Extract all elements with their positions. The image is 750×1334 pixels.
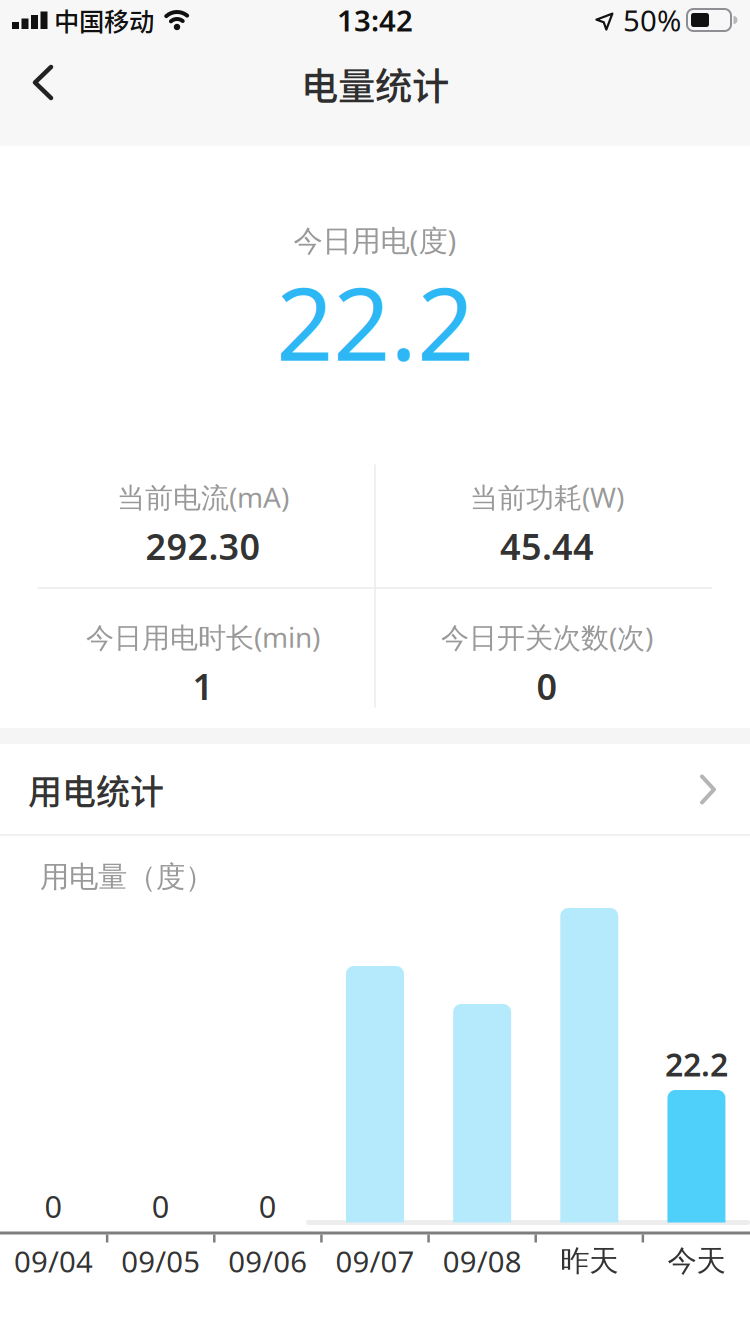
staticText: 1 (192, 662, 213, 710)
staticText: 0 (152, 1186, 170, 1226)
staticText: 09/04 (14, 1241, 93, 1280)
button[interactable]: 用电统计 (0, 744, 750, 835)
staticText: 292.30 (145, 522, 260, 570)
staticText: 50% (623, 0, 681, 39)
staticText: 09/05 (121, 1241, 200, 1280)
staticText: 0 (45, 1186, 63, 1226)
button[interactable]: Back (13, 52, 73, 112)
staticText: 22.2 (276, 256, 474, 388)
staticText: 用电量（度） (40, 859, 214, 895)
staticText: 0 (536, 662, 557, 710)
staticText: 今日用电(度) (293, 220, 456, 259)
staticText: 09/06 (228, 1241, 307, 1280)
staticText: 45.44 (500, 522, 594, 570)
staticText: 22.2 (665, 1043, 728, 1085)
staticText: 当前电流(mA) (117, 478, 289, 516)
staticText: 昨天 (560, 1243, 618, 1279)
staticText: 用电统计 (28, 765, 164, 814)
staticText: 09/07 (335, 1241, 414, 1280)
staticText: 09/08 (443, 1241, 522, 1280)
staticText: 今天 (667, 1243, 725, 1279)
staticText: 中国移动 (54, 2, 154, 38)
staticText: 今日开关次数(次) (441, 618, 653, 656)
staticText: 电量统计 (301, 57, 449, 111)
staticText: 当前功耗(W) (470, 478, 624, 516)
staticText: 今日用电时长(min) (86, 618, 320, 656)
staticText: 13:42 (337, 0, 413, 39)
staticText: 0 (259, 1186, 277, 1226)
